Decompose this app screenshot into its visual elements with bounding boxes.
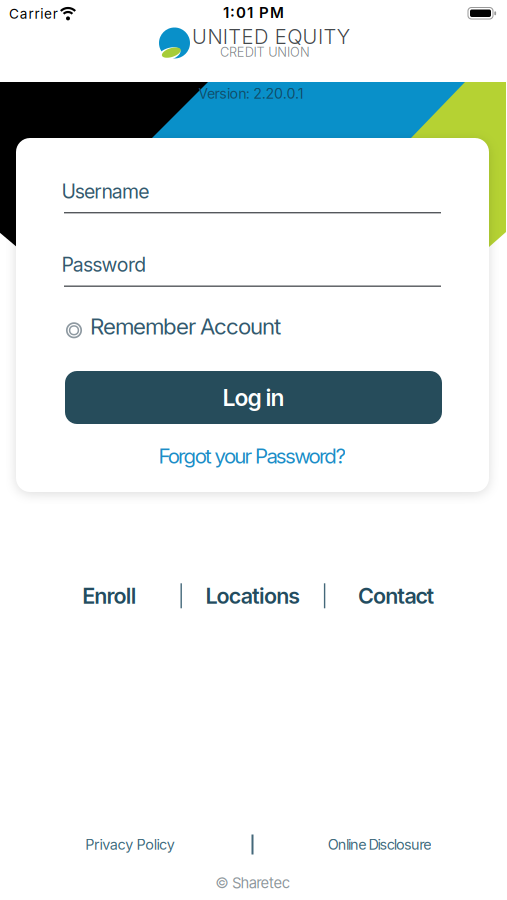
staticText: Carrier (9, 6, 58, 22)
staticText: Enroll (82, 583, 137, 609)
staticText: 1 : 0 1 P M (223, 3, 284, 22)
staticText: C R E D I T U N I O N (220, 44, 310, 60)
staticText: Log in (222, 383, 284, 411)
staticText: Online Disclosure (328, 836, 431, 853)
staticText: Privacy Policy (85, 836, 175, 853)
staticText: Forgot your Password? (158, 444, 346, 468)
staticText: Version: 2.20.0.1 (198, 85, 304, 102)
staticText: Contact (358, 583, 435, 609)
button[interactable]: Forgot your Password? (16, 444, 489, 468)
staticText: U N I T E D E Q U I T Y (192, 24, 350, 49)
staticText: Username (61, 180, 149, 203)
button[interactable]: Locations (182, 582, 324, 609)
button[interactable]: Privacy Policy (8, 834, 251, 855)
button[interactable]: Remember Account (57, 313, 297, 343)
button[interactable]: Online Disclosure (253, 834, 505, 855)
button[interactable]: Contact (325, 582, 467, 609)
button[interactable]: Enroll (38, 582, 180, 609)
staticText: Locations (205, 583, 300, 609)
staticText: Password (61, 253, 146, 276)
staticText: Remember Account (90, 313, 281, 340)
button[interactable]: Log in (65, 371, 442, 424)
staticText: © Sharetec (215, 874, 290, 892)
